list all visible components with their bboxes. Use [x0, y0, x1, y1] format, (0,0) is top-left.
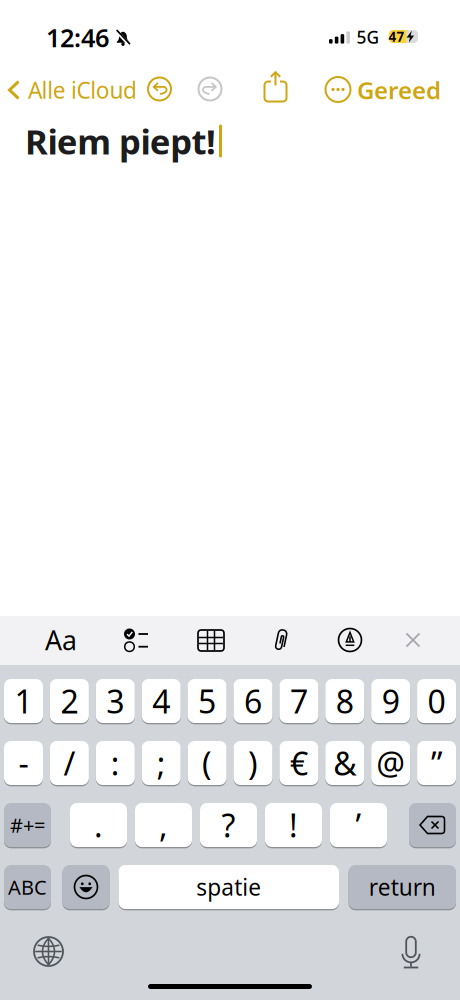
staticText: 6: [244, 680, 262, 722]
button[interactable]: return: [348, 865, 456, 909]
button[interactable]: ”: [417, 741, 456, 785]
button[interactable]: Undo: [148, 77, 171, 100]
staticText: Alle iCloud: [28, 75, 137, 105]
staticText: ,: [159, 804, 168, 846]
button[interactable]: !: [265, 803, 322, 847]
staticText: &: [333, 742, 356, 784]
staticText: !: [289, 804, 298, 846]
staticText: -: [18, 742, 28, 784]
staticText: ;: [157, 742, 166, 784]
button[interactable]: ABC: [4, 865, 51, 909]
button[interactable]: 1: [4, 679, 43, 723]
button[interactable]: -: [4, 741, 43, 785]
button[interactable]: 4: [142, 679, 181, 723]
button[interactable]: /: [50, 741, 89, 785]
button[interactable]: ;: [142, 741, 181, 785]
button[interactable]: .: [70, 803, 127, 847]
button[interactable]: &: [325, 741, 364, 785]
button[interactable]: Table: [198, 630, 224, 651]
staticText: ): [248, 742, 258, 784]
button[interactable]: ): [233, 741, 272, 785]
staticText: €: [290, 742, 308, 784]
button[interactable]: spatie: [118, 865, 339, 909]
button[interactable]: Delete: [409, 803, 456, 847]
staticText: (: [202, 742, 212, 784]
staticText: 8: [336, 680, 354, 722]
button[interactable]: 2: [50, 679, 89, 723]
button[interactable]: 6: [233, 679, 272, 723]
button[interactable]: ?: [200, 803, 257, 847]
button[interactable]: Redo: [198, 77, 221, 100]
button[interactable]: Share: [264, 71, 287, 102]
button[interactable]: ’: [330, 803, 387, 847]
staticText: 4: [152, 680, 170, 722]
button[interactable]: Checklist: [124, 628, 148, 651]
staticText: .: [94, 804, 103, 846]
staticText: ?: [221, 804, 235, 846]
staticText: :: [111, 742, 120, 784]
button[interactable]: Dictate: [400, 936, 422, 968]
staticText: 3: [106, 680, 124, 722]
button[interactable]: Markup: [338, 628, 361, 651]
button[interactable]: Dismiss keyboard: [405, 632, 420, 647]
staticText: 1: [14, 680, 32, 722]
staticText: /: [63, 742, 75, 784]
staticText: 5: [198, 680, 216, 722]
staticText: 0: [428, 680, 446, 722]
button[interactable]: (: [188, 741, 227, 785]
staticText: 47: [388, 28, 404, 45]
staticText: return: [369, 872, 436, 902]
button[interactable]: 3: [96, 679, 135, 723]
button[interactable]: 9: [371, 679, 410, 723]
button[interactable]: Emoji: [62, 865, 109, 909]
staticText: Gereed: [357, 74, 441, 106]
button[interactable]: Gereed: [357, 74, 441, 106]
staticText: Riem piept!: [25, 118, 216, 164]
staticText: Aa: [45, 622, 77, 658]
button[interactable]: Back: [8, 75, 137, 105]
staticText: ABC: [8, 874, 47, 900]
button[interactable]: @: [371, 741, 410, 785]
staticText: ”: [431, 742, 442, 784]
staticText: ’: [355, 804, 361, 846]
staticText: 12:46: [46, 21, 109, 54]
staticText: spatie: [196, 872, 261, 902]
staticText: #+=: [10, 812, 45, 838]
button[interactable]: €: [279, 741, 318, 785]
button[interactable]: 5: [188, 679, 227, 723]
button[interactable]: Format: [45, 622, 77, 658]
button[interactable]: 0: [417, 679, 456, 723]
button[interactable]: #+=: [4, 803, 51, 847]
button[interactable]: 7: [279, 679, 318, 723]
button[interactable]: ,: [135, 803, 192, 847]
staticText: 9: [382, 680, 400, 722]
button[interactable]: 8: [325, 679, 364, 723]
button[interactable]: Attach: [273, 628, 289, 652]
staticText: 7: [290, 680, 308, 722]
button[interactable]: :: [96, 741, 135, 785]
staticText: @: [376, 742, 405, 784]
staticText: 2: [60, 680, 78, 722]
button[interactable]: More: [325, 77, 350, 102]
staticText: 5G: [356, 25, 379, 48]
button[interactable]: Next keyboard: [34, 937, 63, 966]
